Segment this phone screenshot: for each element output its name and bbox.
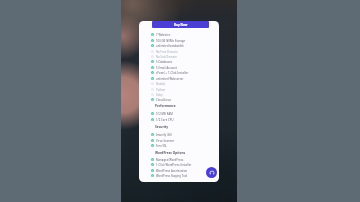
staticText: Buy Now [174, 23, 188, 27]
staticText: 512 MB RAM [156, 112, 173, 116]
button[interactable]: No Free Domain [151, 49, 215, 54]
button[interactable]: CloudLinux [151, 97, 215, 102]
button[interactable]: unlimited bandwidth [151, 43, 215, 48]
button[interactable]: 7 Websites [151, 32, 215, 37]
button[interactable]: Managed WordPress [151, 157, 215, 162]
button[interactable]: Imunify 360 [151, 132, 215, 137]
button[interactable]: 1-Click WordPress Installer [151, 162, 215, 167]
button[interactable]: Virus Scanner [151, 138, 215, 143]
staticText: unlimited bandwidth [156, 44, 184, 48]
button[interactable]: Free SSL [151, 143, 215, 148]
button[interactable]: 5 Databases [151, 59, 215, 64]
staticText: 100 GB NVMe Storage [156, 39, 186, 43]
staticText: 7 Websites [156, 33, 171, 37]
button[interactable]: 5 Email Account [151, 65, 215, 70]
button[interactable]: Buy Now [152, 21, 209, 28]
staticText: Python [156, 88, 166, 92]
button[interactable]: unlimited Webserver [151, 76, 215, 81]
staticText: CloudLinux [156, 98, 171, 102]
button[interactable]: WordPress Staging Tool [151, 173, 215, 178]
staticText: WordPress Options [155, 151, 186, 155]
staticText: 1-Click WordPress Installer [156, 163, 192, 167]
staticText: Performance [155, 104, 176, 108]
staticText: No Sub Domain [156, 55, 177, 59]
staticText: Imunify 360 [156, 133, 172, 137]
staticText: Security [155, 125, 168, 129]
button[interactable]: No Sub Domain [151, 54, 215, 59]
button[interactable]: NodeJs [151, 81, 215, 86]
button[interactable]: 100 GB NVMe Storage [151, 38, 215, 43]
staticText: 5 Databases [156, 60, 173, 64]
button[interactable]: Python [151, 87, 215, 92]
staticText: No Free Domain [156, 50, 178, 54]
staticText: unlimited Webserver [156, 77, 184, 81]
button[interactable]: cPanel + 1-Click Installer [151, 70, 215, 75]
staticText: NodeJs [156, 82, 166, 86]
staticText: Virus Scanner [156, 139, 175, 143]
staticText: 1/2 Core CPU [156, 118, 174, 122]
staticText: Ruby [156, 93, 163, 97]
staticText: WordPress Acceleration [156, 169, 188, 173]
button[interactable]: WordPress Acceleration [151, 168, 215, 173]
staticText: 5 Email Account [156, 66, 178, 70]
staticText: cPanel + 1-Click Installer [156, 71, 189, 75]
button[interactable]: 1/2 Core CPU [151, 117, 215, 122]
button[interactable]: Support chat [206, 167, 217, 178]
button[interactable]: Ruby [151, 92, 215, 97]
staticText: Managed WordPress [156, 158, 184, 162]
staticText: WordPress Staging Tool [156, 174, 188, 178]
button[interactable]: 512 MB RAM [151, 111, 215, 116]
staticText: Free SSL [156, 144, 168, 148]
